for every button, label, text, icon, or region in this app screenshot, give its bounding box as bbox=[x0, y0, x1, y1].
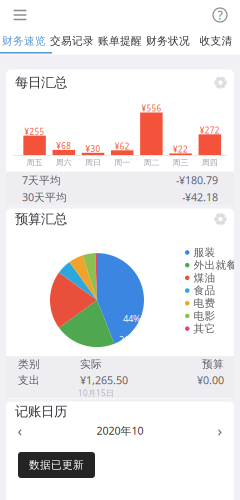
staticText: 周六 bbox=[56, 158, 72, 167]
staticText: 食品 bbox=[193, 284, 215, 297]
button[interactable]: Next month bbox=[212, 423, 228, 439]
staticText: 21% bbox=[119, 333, 137, 345]
staticText: 外出就餐 bbox=[193, 259, 237, 272]
staticText: ¥62 bbox=[115, 141, 130, 152]
staticText: 其它 bbox=[193, 322, 215, 335]
button[interactable]: 账单提醒 bbox=[96, 30, 144, 52]
staticText: ¥22 bbox=[173, 144, 188, 155]
staticText: 周一 bbox=[114, 158, 130, 167]
staticText: 类别 bbox=[18, 357, 40, 371]
staticText: -¥42.18 bbox=[182, 190, 218, 204]
button[interactable]: 交易记录 bbox=[48, 30, 96, 52]
button[interactable]: 收支清 bbox=[192, 30, 240, 52]
staticText: 电影 bbox=[193, 309, 215, 322]
staticText: 周五 bbox=[27, 158, 43, 167]
staticText: -¥180.79 bbox=[176, 173, 218, 187]
staticText: ¥30 bbox=[85, 143, 100, 154]
staticText: 数据已更新 bbox=[29, 458, 84, 471]
button[interactable]: 财务状况 bbox=[144, 30, 192, 52]
button[interactable]: Settings bbox=[214, 76, 227, 89]
staticText: 2020年10 bbox=[96, 423, 143, 438]
staticText: 30天平均 bbox=[22, 190, 67, 204]
staticText: 记账日历 bbox=[15, 403, 67, 420]
staticText: ¥68 bbox=[56, 141, 71, 151]
staticText: ¥255 bbox=[25, 126, 45, 137]
staticText: 5% bbox=[79, 347, 91, 358]
staticText: 交易记录 bbox=[50, 34, 94, 47]
staticText: 每日汇总 bbox=[15, 74, 67, 91]
staticText: 账单提醒 bbox=[98, 34, 142, 47]
button[interactable]: Menu bbox=[5, 0, 35, 30]
staticText: ¥556 bbox=[141, 103, 161, 114]
staticText: ? bbox=[217, 7, 222, 23]
staticText: 服装 bbox=[193, 246, 215, 259]
staticText: 收支清 bbox=[199, 34, 232, 47]
staticText: 7天平均 bbox=[22, 173, 61, 187]
staticText: 财务速览 bbox=[2, 34, 46, 47]
staticText: 5% bbox=[89, 347, 101, 358]
staticText: 煤油 bbox=[193, 271, 215, 284]
staticText: ¥1,265.50 bbox=[80, 373, 128, 387]
staticText: 财务状况 bbox=[146, 34, 190, 47]
staticText: › bbox=[217, 421, 222, 440]
staticText: 支出 bbox=[18, 373, 40, 387]
button[interactable]: Settings bbox=[214, 213, 227, 226]
staticText: 周二 bbox=[143, 158, 159, 167]
staticText: 44% bbox=[123, 312, 141, 324]
staticText: ‹ bbox=[17, 421, 22, 440]
button[interactable]: Previous month bbox=[12, 423, 28, 439]
staticText: ¥0.00 bbox=[197, 373, 224, 387]
button[interactable]: Help bbox=[205, 0, 235, 30]
staticText: 周三 bbox=[173, 158, 189, 167]
staticText: 预算 bbox=[202, 357, 224, 371]
staticText: 周四 bbox=[202, 158, 218, 167]
staticText: ¥272 bbox=[200, 125, 220, 136]
button[interactable]: 财务速览 bbox=[0, 30, 48, 52]
staticText: 0% bbox=[99, 347, 111, 358]
staticText: 实际 bbox=[80, 357, 102, 371]
staticText: 预算汇总 bbox=[15, 211, 67, 227]
staticText: 电费 bbox=[193, 297, 215, 310]
staticText: 周日 bbox=[85, 158, 101, 167]
staticText: 10月15日 bbox=[78, 388, 114, 398]
